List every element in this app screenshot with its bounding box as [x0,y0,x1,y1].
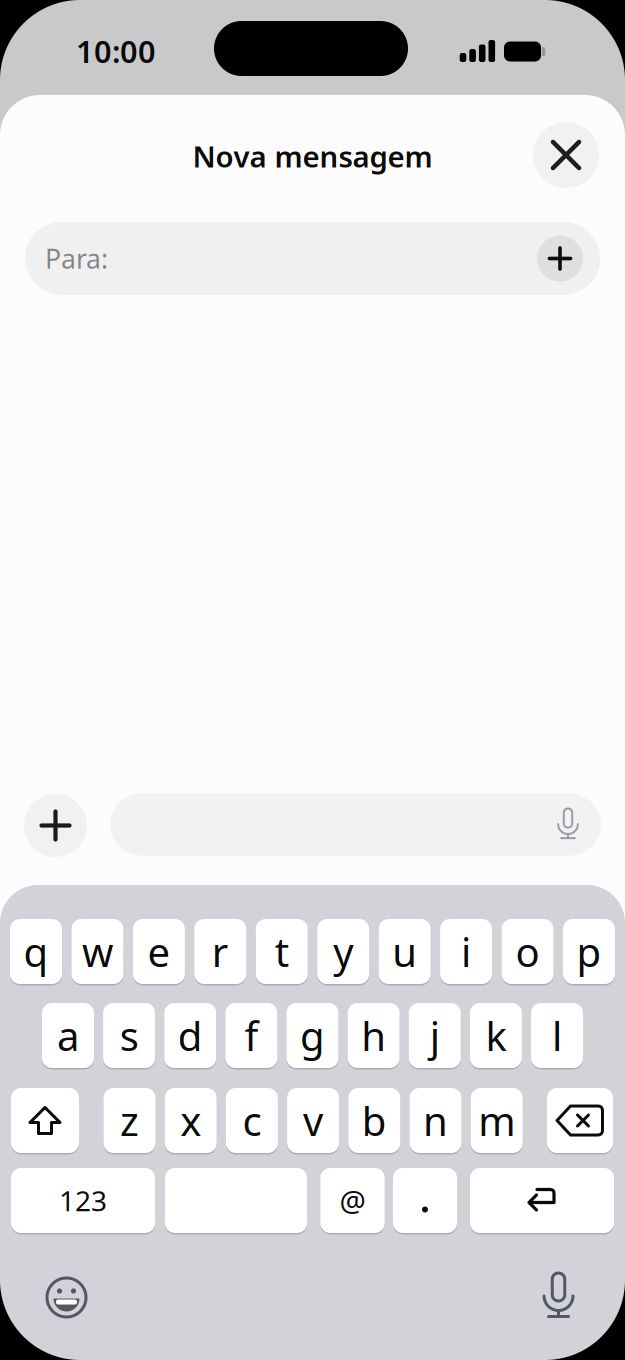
button[interactable]: f [225,1002,277,1069]
staticText: z [120,1094,139,1147]
staticText: d [178,1009,203,1062]
button[interactable]: o [501,918,553,985]
button[interactable]: x [165,1087,217,1154]
button[interactable] [165,1167,307,1234]
button[interactable]: @ [320,1167,385,1234]
button[interactable]: r [194,918,246,985]
button[interactable]: g [286,1002,338,1069]
button[interactable]: z [103,1087,155,1154]
staticText: h [361,1009,386,1062]
button[interactable] [547,1087,613,1154]
staticText: o [515,925,539,978]
button[interactable]: b [348,1087,400,1154]
button[interactable]: q [10,918,62,985]
staticText: Nova mensagem [192,136,432,175]
button[interactable] [528,1265,588,1325]
button[interactable]: d [164,1002,216,1069]
button[interactable]: y [317,918,369,985]
button[interactable] [537,235,583,281]
button[interactable] [24,794,87,857]
staticText: n [423,1094,448,1147]
staticText: 123 [59,1182,107,1219]
button[interactable] [393,1167,457,1234]
staticText: l [552,1009,562,1062]
staticText: @ [339,1181,365,1220]
staticText: p [576,925,601,978]
staticText: t [275,925,289,978]
button[interactable]: j [409,1002,461,1069]
staticText: s [120,1009,139,1062]
button[interactable] [533,122,599,188]
staticText: m [478,1094,515,1147]
button[interactable] [470,1167,614,1234]
button[interactable]: i [440,918,492,985]
button[interactable]: c [226,1087,278,1154]
button[interactable]: m [471,1087,523,1154]
staticText: f [244,1009,258,1062]
staticText: x [180,1094,201,1147]
staticText: v [303,1094,323,1147]
button[interactable]: k [470,1002,522,1069]
button[interactable]: h [348,1002,400,1069]
staticText: y [333,925,353,978]
staticText: a [57,1009,79,1062]
button[interactable]: w [71,918,123,985]
button[interactable]: 123 [11,1167,155,1234]
button[interactable]: n [409,1087,461,1154]
button[interactable]: t [256,918,308,985]
button[interactable]: p [563,918,615,985]
button[interactable]: v [287,1087,339,1154]
staticText: 10:00 [76,31,156,71]
staticText: q [23,925,48,978]
staticText: c [242,1094,261,1147]
staticText: w [82,925,113,978]
staticText: e [147,925,170,978]
staticText: u [392,925,417,978]
staticText: j [430,1009,440,1062]
staticText: g [300,1009,325,1062]
button[interactable]: a [42,1002,94,1069]
button[interactable] [36,1267,96,1327]
button[interactable]: e [133,918,185,985]
staticText: k [485,1009,506,1062]
button[interactable]: u [379,918,431,985]
button[interactable] [11,1087,79,1154]
staticText: i [461,925,471,978]
staticText: Para: [45,241,108,276]
button[interactable] [110,793,601,855]
button[interactable]: s [103,1002,155,1069]
staticText: r [212,925,229,978]
staticText: b [362,1094,387,1147]
button[interactable]: l [531,1002,583,1069]
